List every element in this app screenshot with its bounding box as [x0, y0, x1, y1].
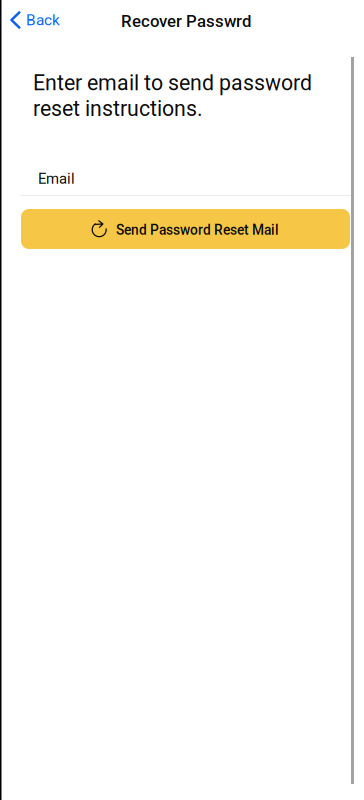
button[interactable]: Send Password Reset Mail	[21, 209, 350, 249]
staticText: Back	[26, 11, 60, 29]
staticText: Recover Passwrd	[121, 11, 251, 31]
staticText: Email	[38, 170, 75, 187]
staticText: Enter email to send password	[33, 70, 312, 95]
staticText: Send Password Reset Mail	[116, 222, 279, 238]
staticText: reset instructions.	[33, 96, 203, 121]
button[interactable]: Back	[5, 5, 65, 35]
